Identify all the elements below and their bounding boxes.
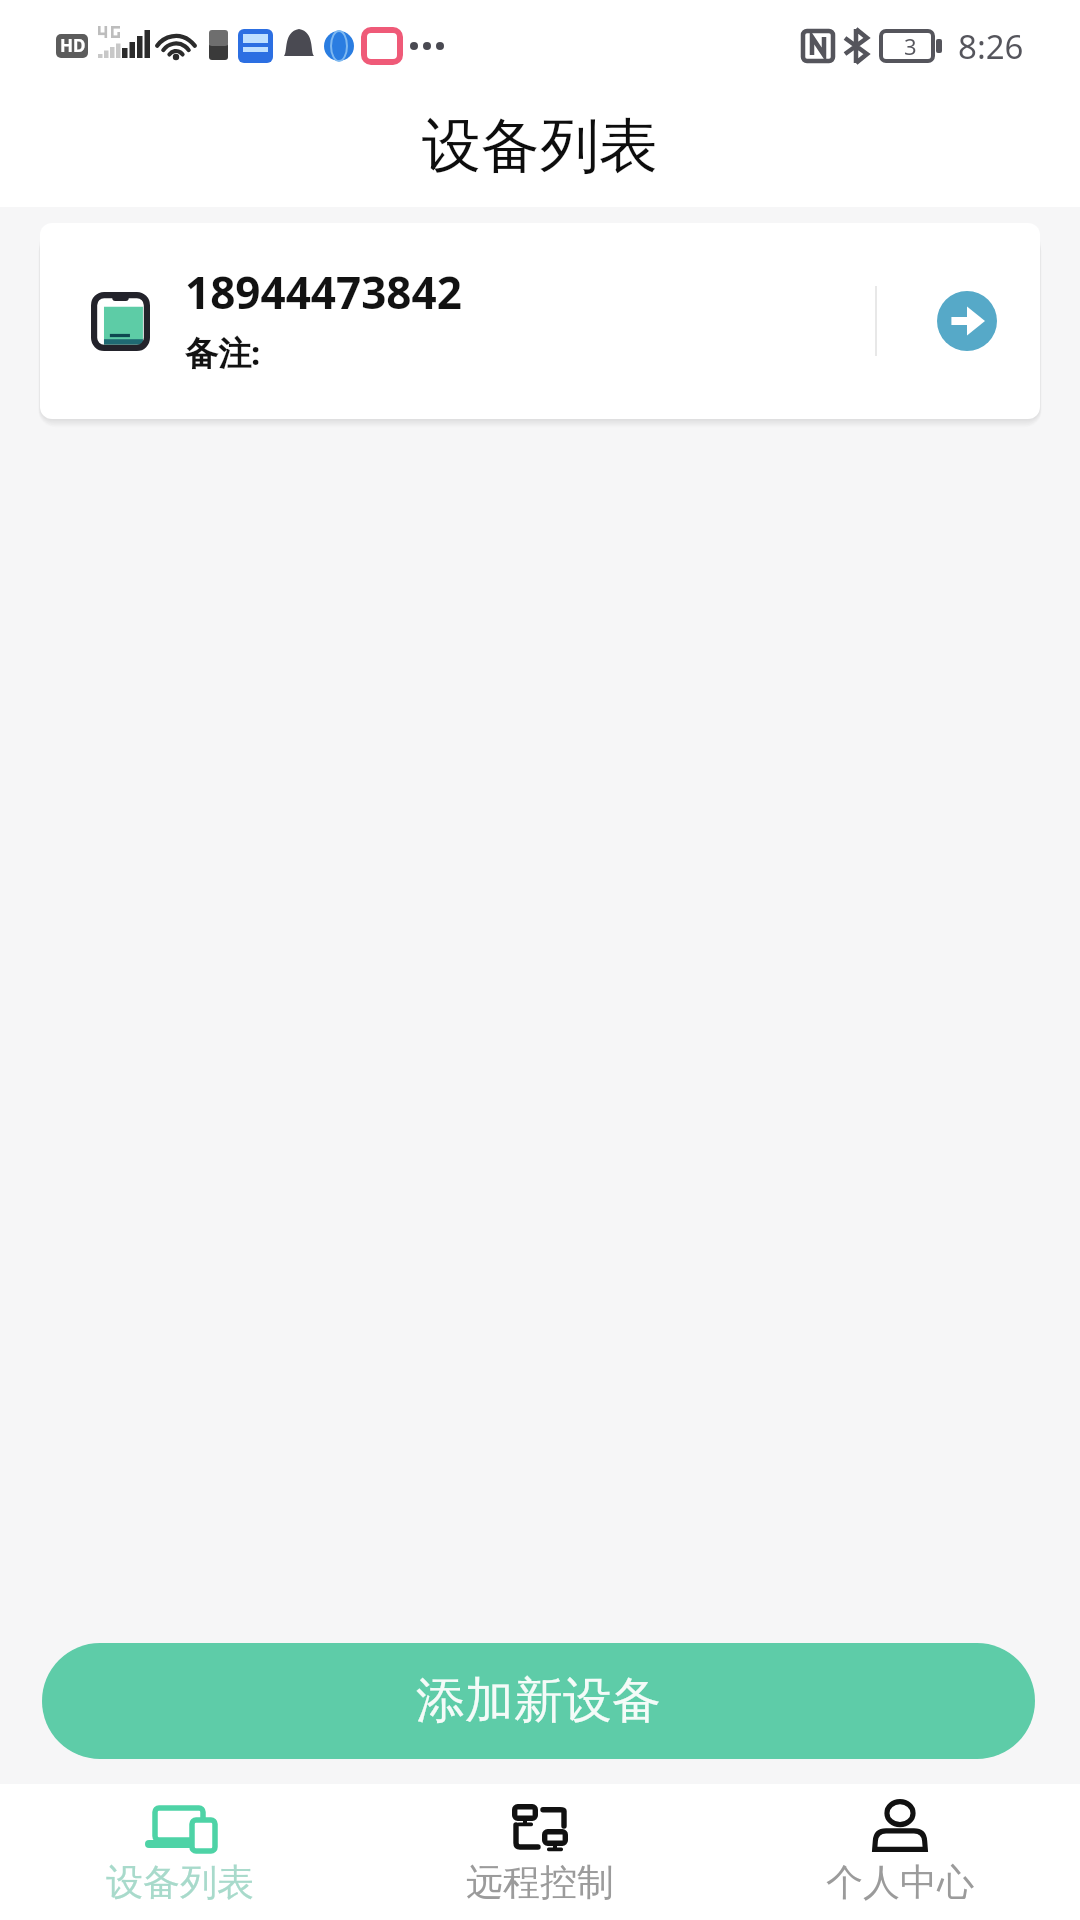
staticText: 18944473842	[185, 262, 462, 322]
button[interactable]: 设备列表	[0, 1784, 360, 1920]
button[interactable]: 个人中心	[720, 1784, 1080, 1920]
staticText: HD	[60, 34, 86, 57]
staticText: 备注:	[185, 330, 261, 375]
staticText: 8:26	[958, 24, 1024, 69]
staticText: 远程控制	[466, 1859, 614, 1906]
button[interactable]: 远程控制	[360, 1784, 720, 1920]
button[interactable]: 18944473842	[40, 223, 1040, 419]
button[interactable]: 进入设备	[877, 223, 1040, 419]
staticText: 设备列表	[422, 109, 658, 183]
staticText: 3	[904, 31, 917, 61]
staticText: 添加新设备	[416, 1670, 661, 1732]
button[interactable]: 添加新设备	[42, 1643, 1035, 1759]
staticText: 设备列表	[106, 1859, 254, 1906]
staticText: 个人中心	[826, 1859, 974, 1906]
